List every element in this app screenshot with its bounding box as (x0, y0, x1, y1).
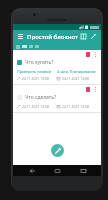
button[interactable]: Grid view (79, 32, 88, 41)
button[interactable]: More options (93, 86, 98, 93)
button[interactable]: Menu (16, 32, 25, 41)
button[interactable]: Completed (17, 60, 22, 65)
button[interactable] (35, 45, 39, 48)
button[interactable]: Recents (76, 165, 90, 176)
button[interactable]: Priority (86, 52, 90, 57)
button[interactable]: Priority (86, 87, 90, 92)
staticText: Простой блокнот (27, 33, 79, 41)
button[interactable]: Priority (13, 85, 101, 113)
staticText: 24.11.2021 13:08 (62, 104, 89, 109)
staticText: 24.11.2021 13:08 (22, 104, 49, 109)
staticText: 24.11.2021 13:08 (62, 76, 89, 81)
button[interactable]: Home (50, 165, 64, 176)
button[interactable]: Notes (16, 45, 20, 49)
staticText: Проверить готовый (17, 69, 57, 74)
staticText: Что сделать? (25, 94, 57, 101)
button[interactable]: Priority (13, 50, 101, 85)
staticText: Что купить? (25, 59, 54, 66)
button[interactable] (29, 45, 33, 48)
button[interactable]: Edit (89, 32, 98, 41)
button[interactable]: More options (93, 51, 98, 58)
staticText: 24.11.2021 13:08 (22, 76, 49, 81)
button[interactable]: New note (51, 144, 64, 157)
button[interactable]: Back (25, 165, 39, 176)
staticText: 4 часа. Планирование (57, 69, 97, 74)
button[interactable] (22, 45, 27, 48)
